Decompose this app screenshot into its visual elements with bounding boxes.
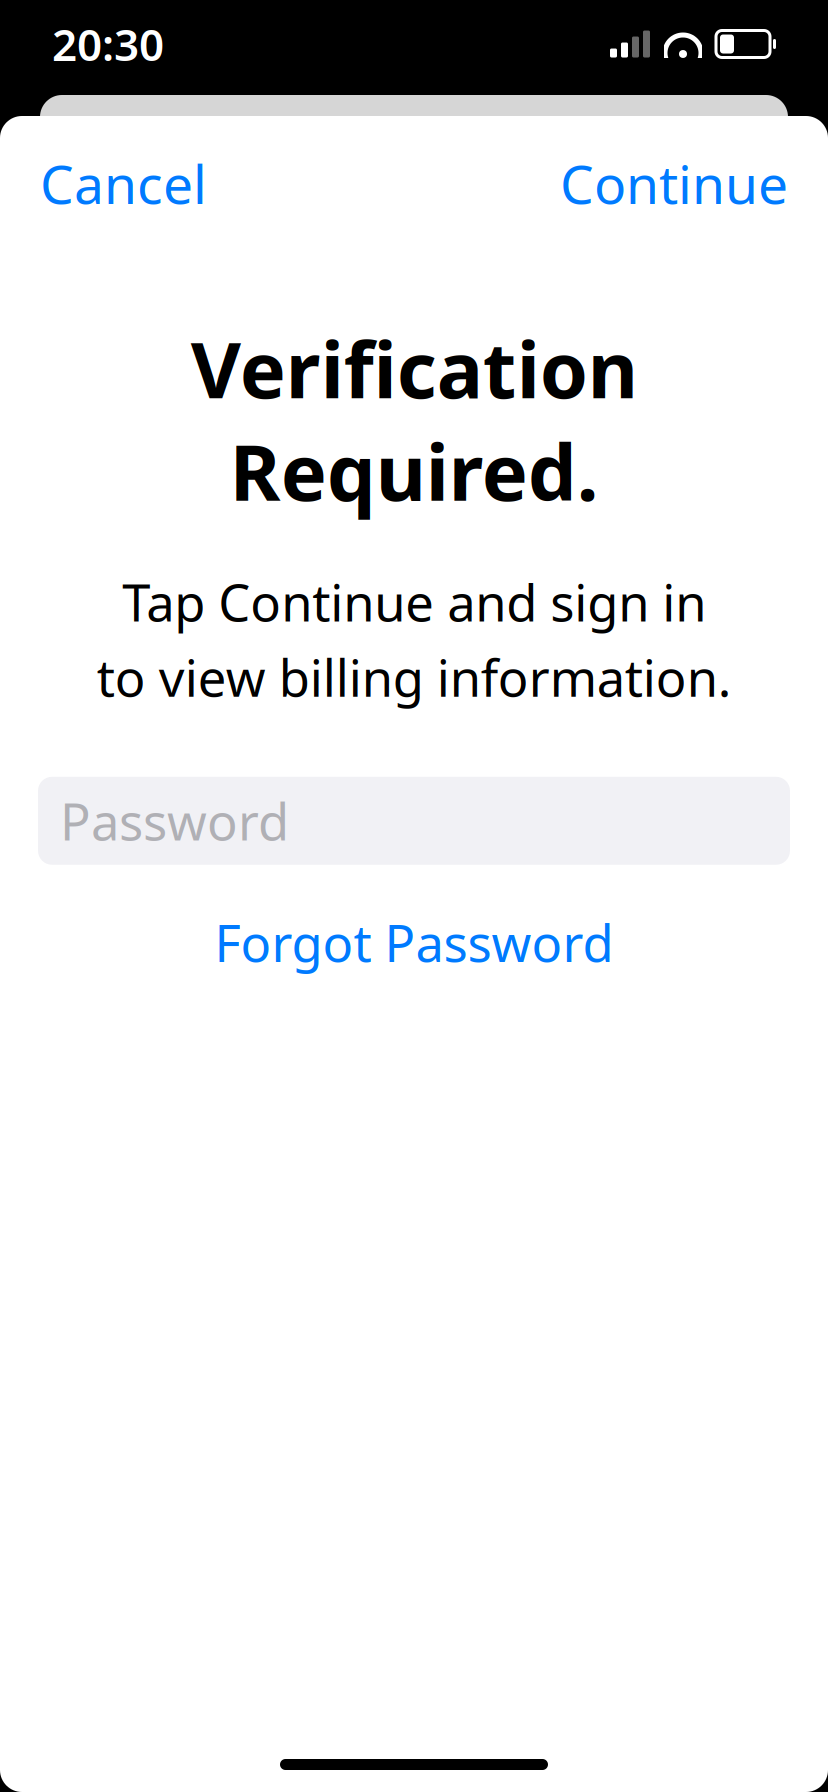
staticText: 20:30 — [52, 15, 164, 73]
staticText: Tap Continue and sign in — [122, 568, 706, 635]
staticText: Verification Required. — [190, 317, 637, 522]
staticText: to view billing information. — [96, 643, 731, 711]
button[interactable]: Cancel — [40, 138, 207, 229]
button[interactable]: Forgot Password — [194, 897, 633, 988]
staticText: Forgot Password — [214, 909, 613, 976]
staticText: Password — [60, 787, 289, 854]
button[interactable]: Continue — [560, 138, 788, 229]
staticText: Continue — [560, 148, 788, 219]
staticText: Cancel — [40, 148, 207, 219]
button[interactable]: Password — [38, 777, 790, 865]
